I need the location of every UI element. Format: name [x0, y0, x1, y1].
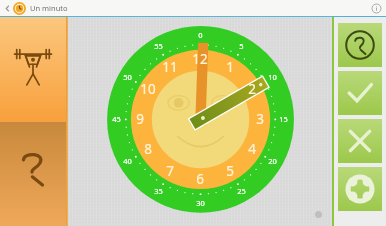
- staticText: 35: [154, 186, 163, 196]
- staticText: 10: [268, 72, 277, 82]
- staticText: 5: [239, 41, 244, 51]
- button[interactable]: Cancel: [338, 119, 382, 163]
- button[interactable]: Reset: [338, 167, 382, 211]
- button[interactable]: Back: [2, 3, 13, 14]
- staticText: 55: [154, 41, 163, 51]
- staticText: 7: [166, 162, 174, 180]
- button[interactable]: Help: [338, 23, 382, 67]
- staticText: 0: [198, 30, 203, 40]
- other: App icon: [13, 2, 26, 15]
- button[interactable]: Help: [0, 122, 66, 226]
- staticText: 6: [196, 170, 204, 188]
- staticText: 8: [144, 140, 152, 158]
- staticText: 12: [192, 50, 208, 68]
- staticText: 11: [162, 58, 178, 76]
- staticText: Un minuto: [30, 3, 68, 13]
- staticText: 2: [248, 80, 256, 98]
- staticText: 3: [256, 110, 264, 128]
- staticText: 4: [248, 140, 256, 158]
- staticText: 10: [140, 80, 156, 98]
- staticText: 25: [237, 186, 246, 196]
- staticText: 5: [226, 162, 234, 180]
- button[interactable]: Accept: [338, 71, 382, 115]
- staticText: 9: [136, 110, 144, 128]
- staticText: 50: [123, 72, 132, 82]
- staticText: 40: [123, 156, 132, 166]
- button[interactable]: Exercise: [0, 17, 66, 122]
- staticText: 15: [279, 114, 288, 124]
- staticText: 45: [112, 114, 121, 124]
- staticText: 20: [268, 156, 277, 166]
- staticText: 30: [196, 198, 205, 208]
- staticText: 1: [226, 58, 234, 76]
- button[interactable]: Info: [369, 1, 383, 15]
